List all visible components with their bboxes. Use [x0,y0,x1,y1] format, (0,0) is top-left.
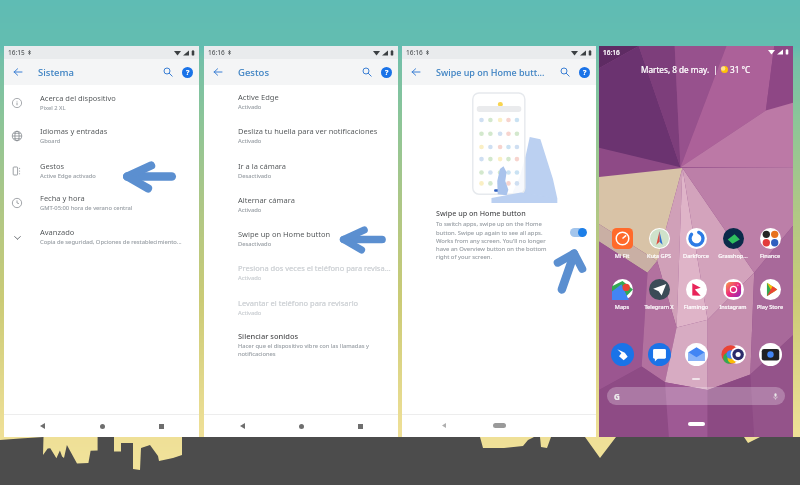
button[interactable]: Ir a la cámara [204,161,398,192]
staticText: 16:16 [603,48,620,57]
staticText: Hacer que el dispositivo vibre con las l… [238,342,389,357]
button[interactable]: Play Store [753,279,787,311]
button[interactable]: Recents [152,417,170,435]
staticText: Mi Fit [605,252,639,260]
button[interactable]: Gestos [4,161,199,191]
button[interactable]: Silenciar sonidos [204,331,398,367]
staticText: Active Edge [238,92,279,102]
button[interactable]: Levantar el teléfono para revisarlo [204,298,398,329]
staticText: Avanzado [40,227,75,237]
button[interactable]: Kuta GPS [642,228,676,260]
staticText: 16:16 [406,48,423,57]
staticText: Gestos [40,161,65,171]
staticText: 16:15 [8,48,25,57]
button[interactable]: Help [574,59,595,85]
button[interactable]: Toggle [570,228,587,237]
staticText: Sistema [38,66,159,79]
button[interactable]: Fecha y hora [4,193,199,223]
staticText: ? [583,68,587,78]
staticText: Kuta GPS [642,252,676,260]
button[interactable]: Darkforce [679,228,713,260]
staticText: Flamingo [679,303,713,311]
staticText: Gboard [40,137,61,145]
staticText: Active Edge activado [40,172,96,180]
button[interactable]: App [605,343,639,366]
staticText: Idiomas y entradas [40,126,108,136]
staticText: To switch apps, swipe up on the Home but… [436,220,556,260]
staticText: Play Store [753,303,787,311]
button[interactable]: Grasshop... [716,228,750,260]
staticText: Activado [238,309,262,317]
button[interactable]: Home [292,417,310,435]
button[interactable]: Instagram [716,279,750,311]
button[interactable]: Presiona dos veces el teléfono para revi… [204,263,398,294]
staticText: Acerca del dispositivo [40,93,116,103]
button[interactable]: Search [607,387,785,405]
button[interactable]: Back [402,59,430,85]
staticText: Finance [753,252,787,260]
button[interactable]: Alternar cámara [204,195,398,226]
staticText: Alternar cámara [238,195,295,205]
staticText: Martes, 8 de may. | [641,64,718,75]
staticText: 31 °C [730,64,751,75]
button[interactable]: App [642,343,676,366]
staticText: G [614,391,620,402]
button[interactable]: Back [233,417,251,435]
staticText: Swipe up on Home button [436,208,526,218]
button[interactable]: Mi Fit [605,228,639,260]
button[interactable]: Home [688,422,705,426]
staticText: Activado [238,137,262,145]
staticText: Desliza tu huella para ver notificacione… [238,126,378,136]
button[interactable]: Active Edge [204,92,398,123]
staticText: Activado [238,206,262,214]
button[interactable]: Telegram X [642,279,676,311]
staticText: Gestos [238,66,358,79]
staticText: Activado [238,103,262,111]
staticText: Activado [238,274,262,282]
button[interactable]: Back [4,59,32,85]
button[interactable]: Search [159,59,177,85]
button[interactable]: Idiomas y entradas [4,126,199,156]
button[interactable]: Search [556,59,574,85]
staticText: Telegram X [642,303,676,311]
button[interactable]: Back [33,417,51,435]
button[interactable]: App [679,343,713,366]
staticText: Desactivado [238,240,272,248]
button[interactable]: Back [204,59,232,85]
button[interactable]: Avanzado [4,227,199,257]
button[interactable]: Help [177,59,198,85]
staticText: Darkforce [679,252,713,260]
staticText: Ir a la cámara [238,161,287,171]
staticText: Silenciar sonidos [238,331,299,341]
staticText: Maps [605,303,639,311]
staticText: ? [186,68,190,78]
staticText: Fecha y hora [40,193,85,203]
staticText: Instagram [716,303,750,311]
button[interactable]: Home [493,423,506,428]
button[interactable]: Maps [605,279,639,311]
button[interactable]: App [753,343,787,366]
button[interactable]: Recents [351,417,369,435]
staticText: Desactivado [238,172,272,180]
button[interactable]: Flamingo [679,279,713,311]
button[interactable]: App [716,343,750,366]
staticText: Swipe up on Home butt... [436,66,556,78]
staticText: Swipe up on Home button [238,229,331,239]
staticText: Pixel 2 XL [40,104,66,112]
button[interactable]: Acerca del dispositivo [4,93,199,123]
staticText: Copia de seguridad, Opciones de restable… [40,238,182,246]
staticText: Levantar el teléfono para revisarlo [238,298,359,308]
staticText: GMT-05:00 hora de verano central [40,204,133,212]
staticText: ? [385,68,389,78]
button[interactable]: Home [93,417,111,435]
button[interactable]: Help [376,59,397,85]
button[interactable]: Swipe up on Home button [204,229,398,260]
button[interactable]: Back [437,419,450,432]
button[interactable]: Search [358,59,376,85]
button[interactable]: Desliza tu huella para ver notificacione… [204,126,398,157]
staticText: 16:16 [208,48,225,57]
staticText: Grasshop... [716,252,750,260]
button[interactable]: Finance [753,228,787,260]
staticText: Presiona dos veces el teléfono para revi… [238,263,392,273]
